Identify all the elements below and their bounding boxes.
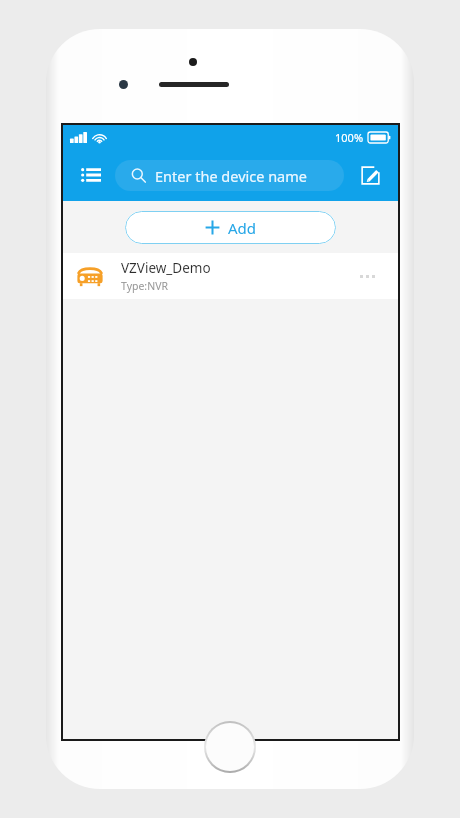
staticText: Enter the device name (155, 166, 307, 186)
staticText: 100% (335, 130, 364, 145)
button[interactable]: Menu (71, 155, 111, 195)
staticText: VZView_Demo (121, 259, 211, 277)
button[interactable]: Edit (350, 155, 390, 195)
staticText: Add (228, 218, 257, 238)
button[interactable]: Enter the device name (115, 160, 344, 191)
button[interactable]: VZView_Demo (63, 253, 398, 299)
staticText: Type:NVR (121, 279, 168, 293)
button[interactable]: More options (350, 259, 384, 293)
button[interactable]: Add (125, 211, 336, 244)
